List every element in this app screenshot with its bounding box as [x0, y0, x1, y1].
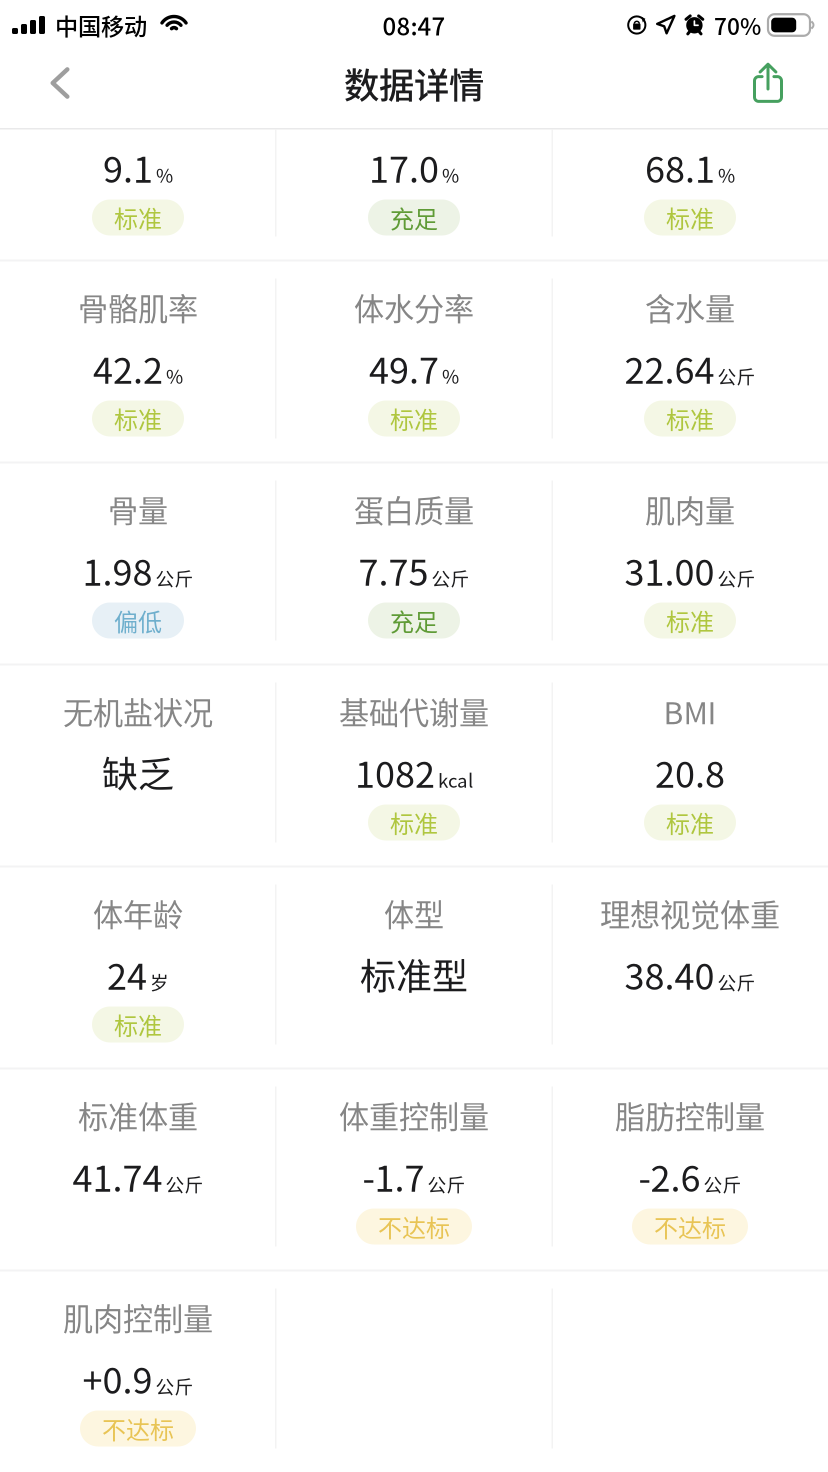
staticText: 公斤 [155, 564, 193, 591]
staticText: 标准体重 [78, 1093, 198, 1137]
staticText: 68.1 [645, 141, 715, 193]
staticText: 体型 [384, 891, 444, 935]
staticText: 脂肪控制量 [615, 1093, 765, 1137]
staticText: % [718, 161, 735, 188]
staticText: 含水量 [645, 285, 735, 329]
staticText: 不达标 [378, 1209, 450, 1244]
staticText: 岁 [150, 968, 169, 995]
staticText: 公斤 [165, 1170, 203, 1197]
staticText: 无机盐状况 [63, 689, 213, 733]
staticText: % [442, 161, 459, 188]
staticText: 公斤 [703, 1170, 741, 1197]
staticText: +0.9 [82, 1352, 152, 1404]
staticText: 体重控制量 [339, 1093, 489, 1137]
staticText: 体年龄 [93, 891, 183, 935]
staticText: BMI [663, 689, 716, 733]
staticText: 公斤 [431, 564, 469, 591]
staticText: 38.40 [624, 948, 714, 1000]
staticText: 1.98 [82, 544, 152, 596]
staticText: 充足 [390, 603, 438, 638]
staticText: 骨量 [108, 487, 168, 531]
staticText: 标准 [390, 805, 438, 840]
staticText: 17.0 [369, 141, 439, 193]
staticText: 肌肉量 [645, 487, 735, 531]
staticText: 70% [714, 9, 761, 41]
staticText: 41.74 [72, 1150, 162, 1202]
staticText: 标准 [666, 401, 714, 436]
staticText: 22.64 [624, 342, 714, 394]
staticText: -1.7 [362, 1150, 424, 1202]
staticText: 理想视觉体重 [600, 891, 780, 935]
staticText: 标准 [666, 603, 714, 638]
staticText: 标准 [390, 401, 438, 436]
staticText: 标准 [114, 401, 162, 436]
staticText: 9.1 [103, 141, 153, 193]
staticText: 公斤 [155, 1372, 193, 1399]
staticText: 标准 [666, 200, 714, 235]
staticText: 31.00 [624, 544, 714, 596]
staticText: 不达标 [102, 1411, 174, 1446]
staticText: -2.6 [638, 1150, 700, 1202]
staticText: % [156, 161, 173, 188]
staticText: 7.75 [358, 544, 428, 596]
staticText: 公斤 [427, 1170, 465, 1197]
staticText: 不达标 [654, 1209, 726, 1244]
button[interactable]: Back [23, 46, 97, 120]
staticText: 标准型 [360, 948, 468, 1000]
staticText: 充足 [390, 200, 438, 235]
staticText: 肌肉控制量 [63, 1295, 213, 1339]
button[interactable]: Share [731, 46, 805, 120]
staticText: 24 [107, 948, 147, 1000]
staticText: 体水分率 [354, 285, 474, 329]
staticText: 08:47 [382, 8, 445, 42]
staticText: 骨骼肌率 [78, 285, 198, 329]
staticText: 49.7 [369, 342, 439, 394]
staticText: 标准 [666, 805, 714, 840]
staticText: 数据详情 [344, 57, 484, 109]
staticText: 公斤 [717, 362, 755, 389]
staticText: 缺乏 [102, 746, 174, 798]
staticText: 1082 [355, 746, 435, 798]
staticText: 公斤 [717, 968, 755, 995]
staticText: 20.8 [655, 746, 725, 798]
staticText: kcal [438, 766, 473, 793]
staticText: 标准 [114, 1007, 162, 1042]
staticText: 蛋白质量 [354, 487, 474, 531]
staticText: % [442, 362, 459, 389]
staticText: 标准 [114, 200, 162, 235]
staticText: % [166, 362, 183, 389]
staticText: 中国移动 [55, 8, 147, 42]
staticText: 公斤 [717, 564, 755, 591]
staticText: 基础代谢量 [339, 689, 489, 733]
staticText: 偏低 [114, 603, 162, 638]
staticText: 42.2 [93, 342, 163, 394]
